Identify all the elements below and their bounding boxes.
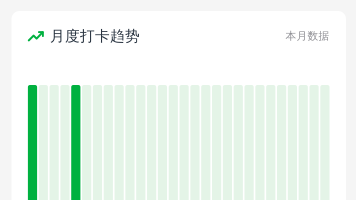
staticText: 本月数据 [286, 29, 330, 42]
staticText: 月度打卡趋势 [50, 27, 140, 45]
